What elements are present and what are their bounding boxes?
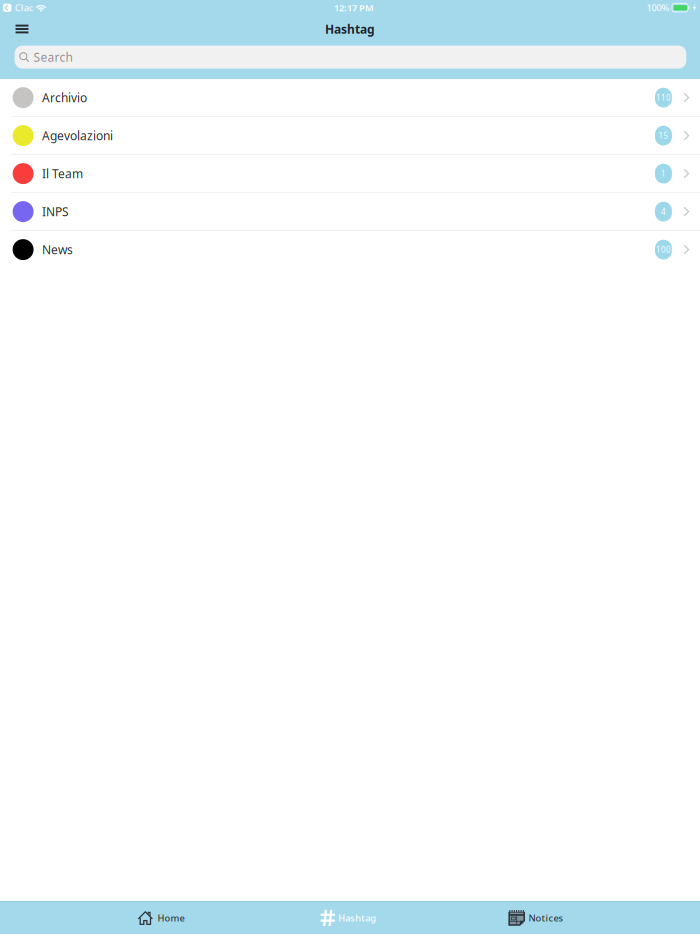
button[interactable]: Hashtag (255, 901, 442, 934)
button[interactable]: Agevolazioni (0, 117, 700, 155)
staticText: Agevolazioni (42, 128, 113, 143)
staticText: News (42, 242, 73, 257)
button[interactable]: Il Team (0, 155, 700, 193)
staticText: 4 (661, 206, 666, 217)
staticText: Clac (15, 2, 34, 14)
staticText: Hashtag (338, 912, 376, 924)
staticText: Search (34, 49, 73, 65)
button[interactable]: Menu (0, 18, 44, 40)
button[interactable]: Search (15, 46, 686, 69)
staticText: Hashtag (325, 21, 375, 37)
staticText: 110 (656, 92, 671, 103)
button[interactable]: INPS (0, 193, 700, 231)
button[interactable]: Home (67, 901, 255, 934)
staticText: Archivio (42, 90, 87, 105)
staticText: 15 (658, 130, 668, 141)
button[interactable]: Clac (3, 2, 34, 14)
button[interactable]: Archivio (0, 79, 700, 117)
staticText: 1 (661, 168, 666, 179)
button[interactable]: News (0, 231, 700, 269)
staticText: Notices (529, 912, 564, 924)
staticText: INPS (42, 204, 69, 219)
staticText: 12:17 PM (334, 2, 374, 14)
staticText: 100 (656, 244, 671, 255)
staticText: Il Team (42, 166, 83, 181)
button[interactable]: Notices (442, 901, 630, 934)
staticText: 100% (647, 2, 670, 14)
staticText: Home (157, 912, 184, 924)
